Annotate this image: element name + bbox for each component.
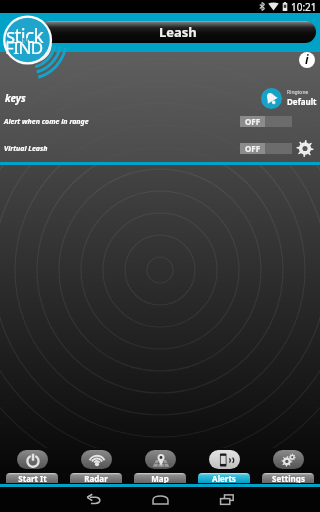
- button[interactable]: Settings: [256, 447, 320, 484]
- staticText: OFF: [245, 143, 261, 154]
- staticText: 10:21: [291, 0, 317, 13]
- button[interactable]: keys: [0, 86, 320, 110]
- staticText: Virtual Leash: [4, 144, 48, 154]
- staticText: i: [305, 52, 309, 67]
- staticText: Radar: [84, 473, 108, 483]
- button[interactable]: Alert when come in range: [0, 113, 320, 130]
- button[interactable]: Home: [143, 487, 177, 512]
- staticText: Default: [287, 96, 317, 107]
- button[interactable]: Back: [76, 487, 110, 512]
- staticText: Ringtone: [287, 89, 309, 96]
- staticText: stick: [6, 23, 44, 49]
- button[interactable]: Info: [299, 52, 315, 68]
- staticText: keys: [5, 91, 26, 105]
- button[interactable]: OFF: [240, 143, 292, 154]
- staticText: Leash: [159, 23, 197, 41]
- button[interactable]: Start It: [0, 447, 64, 484]
- button[interactable]: Recent apps: [210, 487, 244, 512]
- staticText: Map: [151, 473, 169, 483]
- staticText: OFF: [245, 116, 261, 127]
- button[interactable]: Leash: [40, 21, 316, 43]
- button[interactable]: Map: [128, 447, 192, 484]
- button[interactable]: Alerts: [192, 447, 256, 484]
- staticText: Alerts: [212, 473, 236, 483]
- button[interactable]: Leash settings: [295, 140, 315, 157]
- button[interactable]: Virtual Leash: [0, 140, 320, 157]
- button[interactable]: Radar: [64, 447, 128, 484]
- staticText: Settings: [272, 473, 305, 483]
- staticText: Start It: [18, 473, 47, 483]
- staticText: N: [22, 35, 29, 46]
- staticText: Alert when come in range: [4, 117, 89, 127]
- staticText: FIND: [5, 36, 43, 59]
- button[interactable]: OFF: [240, 116, 292, 127]
